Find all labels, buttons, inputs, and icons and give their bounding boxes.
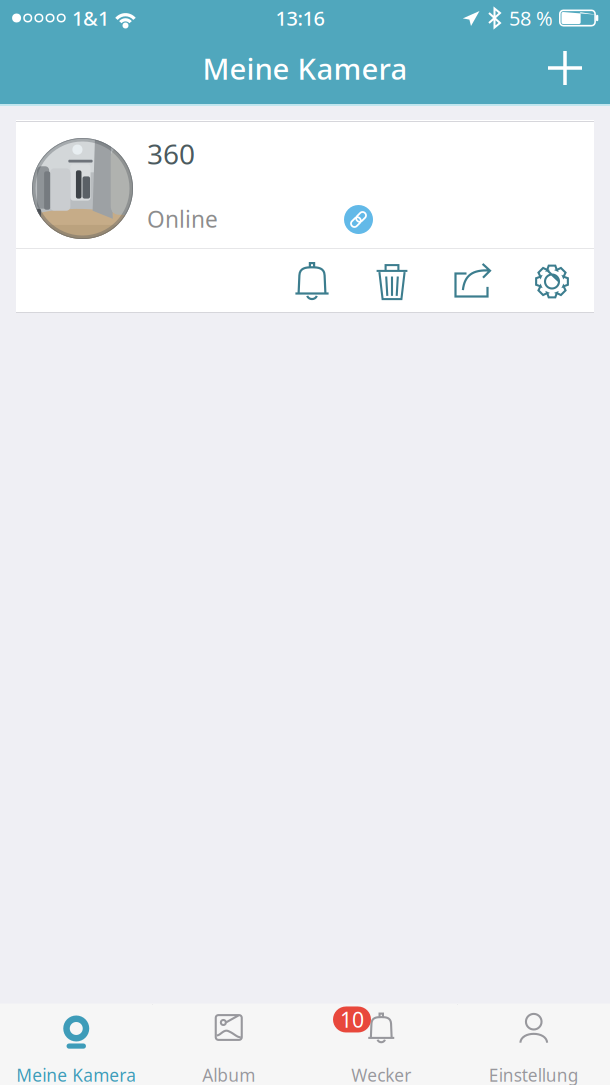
staticText: Wecker xyxy=(351,1063,411,1085)
staticText: Online xyxy=(147,204,218,234)
button[interactable]: Delete xyxy=(352,249,432,313)
staticText: 1&1 xyxy=(72,5,109,31)
button[interactable]: Add camera xyxy=(536,36,594,100)
staticText: Einstellung xyxy=(489,1063,579,1085)
button[interactable]: Share xyxy=(432,249,512,313)
button[interactable]: Notifications xyxy=(272,249,352,313)
staticText: 13:16 xyxy=(275,5,324,31)
staticText: Meine Kamera xyxy=(202,49,407,88)
button[interactable]: 360 xyxy=(16,120,594,248)
staticText: Album xyxy=(202,1063,255,1085)
staticText: 360 xyxy=(147,135,195,172)
button[interactable]: 10 xyxy=(305,1005,457,1085)
button[interactable]: Einstellung xyxy=(457,1005,610,1085)
staticText: Meine Kamera xyxy=(16,1063,136,1085)
button[interactable]: Settings xyxy=(512,249,592,313)
button[interactable]: Meine Kamera xyxy=(0,1005,152,1085)
staticText: 10 xyxy=(340,1005,364,1034)
staticText: 58 % xyxy=(509,5,553,31)
button[interactable]: Album xyxy=(152,1005,305,1085)
